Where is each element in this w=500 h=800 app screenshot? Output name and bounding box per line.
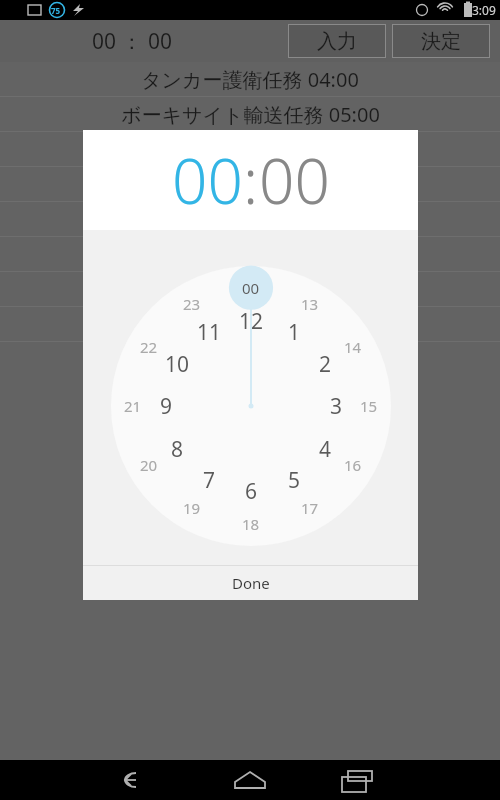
button[interactable]: 囮機動部隊支援作戦 12:00 — [0, 202, 500, 237]
button[interactable]: Done — [83, 566, 418, 600]
staticText: 23 — [183, 294, 201, 314]
staticText: 22 — [140, 337, 158, 357]
button[interactable]: 決定 — [392, 24, 490, 58]
staticText: 12 — [239, 307, 264, 336]
button[interactable]: 00 — [259, 138, 330, 222]
staticText: 16 — [344, 455, 362, 475]
staticText: 2 — [319, 350, 332, 379]
staticText: 00 — [242, 278, 260, 298]
staticText: 囮機動部隊支援作戦 12:00 — [132, 206, 369, 233]
button[interactable]: タンカー護衛任務 04:00 — [0, 62, 500, 97]
staticText: 鼠輸送作戦 04:00 — [172, 136, 329, 163]
staticText: 包囲陸戦隊撤収作戦 06:00 — [132, 171, 369, 198]
staticText: 00 — [259, 138, 330, 222]
staticText: 18 — [242, 514, 260, 534]
staticText: 9 — [160, 392, 173, 421]
staticText: 強行偵察任務 01:30 — [162, 311, 339, 338]
staticText: 11 — [197, 318, 222, 347]
staticText: 10 — [165, 350, 190, 379]
staticText: 7 — [203, 466, 216, 495]
staticText: Done — [232, 573, 270, 593]
staticText: 21 — [124, 396, 142, 416]
staticText: 13 — [301, 294, 319, 314]
staticText: 6 — [245, 477, 258, 506]
staticText: ボーキサイト輸送任務 05:00 — [121, 101, 380, 128]
staticText: タンカー護衛任務 04:00 — [141, 66, 359, 93]
button[interactable]: ボーキサイト輸送任務 05:00 — [0, 97, 500, 132]
staticText: 14 — [344, 337, 362, 357]
staticText: 17 — [301, 498, 319, 518]
button[interactable]: 敵地偵察作戦 00:45 — [0, 272, 500, 307]
staticText: 5 — [288, 466, 301, 495]
staticText: 00 — [172, 138, 243, 222]
staticText: 75 — [51, 5, 61, 16]
staticText: 15 — [360, 396, 378, 416]
button[interactable]: 鼠輸送作戦 04:00 — [0, 132, 500, 167]
staticText: 19 — [183, 498, 201, 518]
button[interactable]: 入力 — [288, 24, 386, 58]
staticText: 敵地偵察作戦 00:45 — [162, 276, 339, 303]
staticText: 00 ： 00 — [92, 27, 172, 56]
staticText: 入力 — [317, 29, 357, 54]
button[interactable]: 00 — [172, 138, 243, 222]
button[interactable]: 艦隊決戦援護作戦 15:00 — [0, 237, 500, 272]
staticText: 4 — [319, 435, 332, 464]
staticText: 3:09 — [472, 2, 496, 18]
button[interactable]: 包囲陸戦隊撤収作戦 06:00 — [0, 167, 500, 202]
staticText: 1 — [288, 318, 301, 347]
button[interactable]: 強行偵察任務 01:30 — [0, 307, 500, 342]
staticText: 8 — [171, 435, 184, 464]
staticText: 20 — [140, 455, 158, 475]
staticText: 3 — [330, 392, 343, 421]
staticText: 決定 — [421, 29, 461, 54]
staticText: : — [243, 138, 259, 222]
